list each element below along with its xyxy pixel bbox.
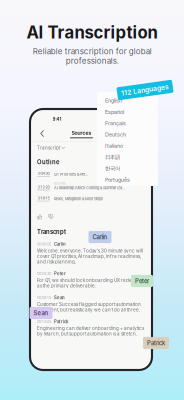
staticText: Sources <box>71 130 91 136</box>
staticText: Q1 Priorities & Per… <box>54 172 88 177</box>
staticText: Engineering can deliver onboarding + ana… <box>37 326 144 337</box>
staticText: Patrick <box>147 339 165 347</box>
staticText: 00:09:15 <box>37 295 51 300</box>
staticText: Português <box>105 176 130 183</box>
button[interactable]: Español <box>105 106 155 118</box>
staticText: Italiano <box>105 143 123 149</box>
staticText: Transcript <box>37 228 66 235</box>
button[interactable]: Italiano <box>105 140 155 151</box>
staticText: AI Roadmap (Voice Cloning & Summariza… <box>54 185 125 190</box>
staticText: Notes <box>110 130 125 136</box>
button[interactable]: Sources <box>66 130 96 138</box>
button[interactable]: 日本語 <box>105 151 155 163</box>
staticText: Carlin <box>54 241 66 247</box>
button[interactable]: Thumbs up <box>37 214 42 219</box>
staticText: Welcome, everyone. Today's 30 minute syn… <box>37 248 143 265</box>
staticText: Customer Success flagged support automat… <box>37 302 141 313</box>
staticText: Sean <box>33 309 48 317</box>
staticText: Peter <box>135 277 149 285</box>
staticText: AI Transcription <box>26 22 157 42</box>
staticText: Français <box>105 120 126 126</box>
staticText: 0:04:30 <box>37 171 49 176</box>
staticText: Carlin <box>92 233 107 241</box>
staticText: Risks, Mitigation & Next Steps <box>54 196 103 201</box>
button[interactable]: Português <box>105 174 155 185</box>
staticText: 9:41 <box>52 116 61 122</box>
button[interactable]: Thumbs down <box>48 214 53 219</box>
staticText: 한국어 <box>105 165 120 172</box>
staticText: 0:18:15 <box>37 196 49 200</box>
button[interactable]: Back <box>37 127 48 139</box>
staticText: Transcript <box>37 145 60 150</box>
staticText: Deutsch <box>105 131 126 138</box>
staticText: Reliable transcription for global profes… <box>32 46 151 66</box>
staticText: 00:14:05 <box>37 319 51 324</box>
staticText: For Q1, we should lock onboarding UX red… <box>37 278 141 289</box>
staticText: Patrick <box>54 319 68 324</box>
staticText: Español <box>105 109 124 115</box>
staticText: English <box>105 97 122 104</box>
staticText: 00:00:00 <box>37 242 51 246</box>
staticText: 日本語 <box>105 154 120 160</box>
staticText: Peter <box>54 271 66 276</box>
button[interactable]: 한국어 <box>105 163 155 174</box>
staticText: (0:17:48) <box>54 182 66 185</box>
staticText: 112 Languages <box>121 86 169 94</box>
staticText: 00:04:30 <box>37 271 51 276</box>
button[interactable]: Français <box>105 118 155 129</box>
button[interactable]: Notes <box>105 130 131 136</box>
button[interactable]: Deutsch <box>105 129 155 140</box>
button[interactable]: English <box>105 95 155 106</box>
staticText: Outline <box>37 158 59 166</box>
staticText: Sean <box>54 295 65 300</box>
staticText: 0:12:20 <box>37 185 49 189</box>
